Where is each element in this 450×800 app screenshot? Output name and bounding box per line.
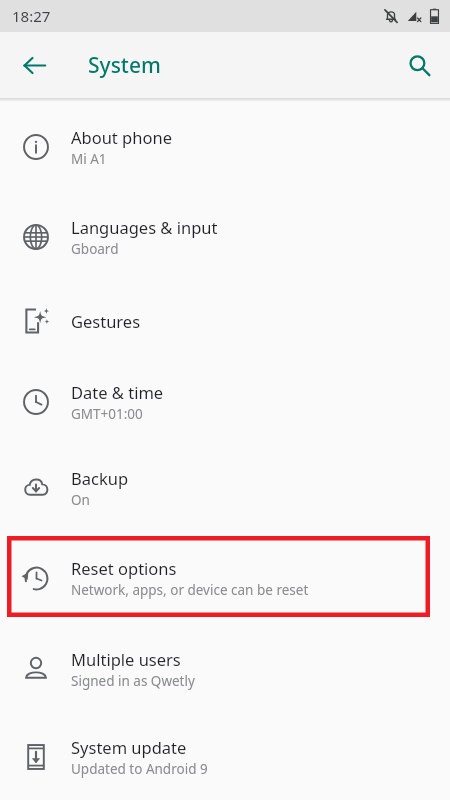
button[interactable]: Multiple users [0, 623, 450, 714]
button[interactable]: Date & time [0, 361, 450, 443]
staticText: Reset options [71, 557, 177, 579]
staticText: Gestures [71, 310, 141, 332]
staticText: Backup [71, 467, 129, 489]
staticText: Signed in as Qwetly [71, 672, 195, 690]
staticText: Date & time [71, 381, 164, 403]
button[interactable]: System update [0, 714, 450, 800]
staticText: Network, apps, or device can be reset [71, 581, 309, 599]
button[interactable]: Backup [0, 443, 450, 532]
button[interactable]: Navigate up [10, 41, 58, 89]
staticText: System [88, 51, 161, 80]
staticText: 18:27 [12, 6, 51, 26]
button[interactable]: Search [395, 41, 443, 89]
button[interactable]: About phone [0, 102, 450, 192]
button[interactable]: Languages & input [0, 192, 450, 281]
staticText: Multiple users [71, 648, 181, 670]
staticText: About phone [71, 126, 172, 148]
staticText: Languages & input [71, 216, 218, 238]
staticText: On [71, 491, 90, 509]
button[interactable]: Gestures [0, 281, 450, 361]
button[interactable]: Reset options [0, 532, 450, 623]
staticText: Gboard [71, 240, 119, 258]
staticText: Updated to Android 9 [71, 760, 208, 778]
staticText: System update [71, 736, 187, 758]
staticText: GMT+01:00 [71, 405, 143, 423]
staticText: Mi A1 [71, 150, 107, 168]
